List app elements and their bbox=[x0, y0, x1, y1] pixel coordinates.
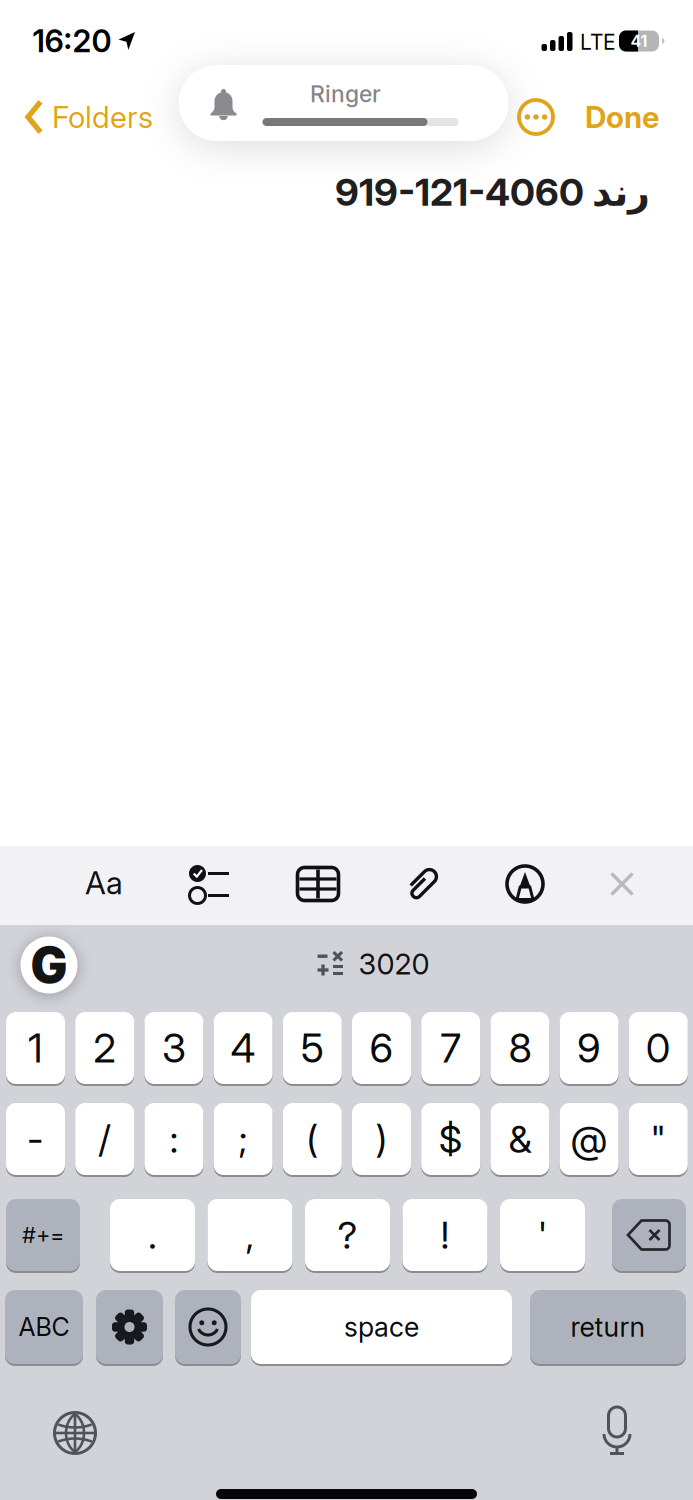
button[interactable]: , bbox=[207, 1199, 292, 1271]
staticText: ! bbox=[440, 1212, 449, 1258]
staticText: 8 bbox=[508, 1024, 531, 1072]
button[interactable]: . bbox=[110, 1199, 195, 1271]
staticText: . bbox=[148, 1212, 157, 1258]
staticText: ) bbox=[375, 1116, 387, 1162]
staticText: ( bbox=[306, 1116, 318, 1162]
staticText: Done bbox=[585, 99, 659, 135]
button[interactable]: 5 bbox=[283, 1012, 342, 1084]
button[interactable] bbox=[610, 872, 634, 896]
staticText: #+= bbox=[22, 1222, 64, 1248]
staticText: 1 bbox=[28, 1024, 43, 1072]
button[interactable]: return bbox=[530, 1290, 686, 1364]
staticText: ? bbox=[337, 1212, 357, 1258]
button[interactable]: Folders bbox=[25, 99, 153, 135]
button[interactable] bbox=[612, 1199, 686, 1271]
staticText: G bbox=[30, 935, 67, 995]
button[interactable]: " bbox=[629, 1103, 688, 1175]
button[interactable] bbox=[602, 1407, 632, 1455]
staticText: LTE bbox=[580, 29, 616, 55]
staticText: " bbox=[650, 1116, 666, 1162]
button[interactable]: ! bbox=[402, 1199, 487, 1271]
staticText: return bbox=[570, 1311, 645, 1343]
staticText: $ bbox=[439, 1116, 463, 1162]
button[interactable]: - bbox=[6, 1103, 65, 1175]
staticText: 5 bbox=[301, 1024, 324, 1072]
staticText: 0 bbox=[646, 1024, 671, 1072]
button[interactable]: 1 bbox=[6, 1012, 65, 1084]
button[interactable]: ' bbox=[500, 1199, 585, 1271]
button[interactable]: #+= bbox=[6, 1199, 80, 1271]
staticText: 16:20 bbox=[32, 22, 111, 60]
button[interactable]: 9 bbox=[560, 1012, 619, 1084]
staticText: ‎919-121-4060 رند bbox=[335, 169, 650, 215]
button[interactable] bbox=[297, 867, 338, 900]
staticText: 7 bbox=[440, 1024, 461, 1072]
staticText: ; bbox=[239, 1116, 248, 1162]
button[interactable]: G bbox=[20, 936, 77, 993]
button[interactable]: : bbox=[144, 1103, 203, 1175]
button[interactable] bbox=[96, 1290, 163, 1364]
button[interactable]: / bbox=[75, 1103, 134, 1175]
button[interactable]: ( bbox=[283, 1103, 342, 1175]
button[interactable]: Done bbox=[585, 99, 659, 135]
button[interactable]: $ bbox=[421, 1103, 480, 1175]
staticText: : bbox=[169, 1116, 178, 1162]
staticText: 6 bbox=[369, 1024, 393, 1072]
staticText: 4 bbox=[231, 1024, 256, 1072]
staticText: & bbox=[508, 1116, 531, 1162]
staticText: Folders bbox=[52, 99, 153, 135]
button[interactable]: 2 bbox=[75, 1012, 134, 1084]
staticText: 3 bbox=[162, 1024, 186, 1072]
button[interactable] bbox=[507, 866, 543, 902]
staticText: , bbox=[245, 1212, 254, 1258]
button[interactable]: Aa bbox=[85, 864, 123, 902]
button[interactable]: & bbox=[490, 1103, 549, 1175]
button[interactable] bbox=[516, 97, 556, 137]
button[interactable] bbox=[405, 864, 439, 904]
button[interactable]: 3020 bbox=[316, 946, 429, 982]
button[interactable] bbox=[188, 864, 230, 904]
staticText: ' bbox=[537, 1212, 547, 1258]
staticText: 3020 bbox=[358, 946, 429, 982]
button[interactable]: ; bbox=[214, 1103, 273, 1175]
staticText: 2 bbox=[93, 1024, 116, 1072]
button[interactable]: 4 bbox=[214, 1012, 273, 1084]
staticText: Aa bbox=[85, 864, 123, 902]
staticText: ABC bbox=[18, 1312, 69, 1342]
button[interactable] bbox=[175, 1290, 241, 1364]
staticText: - bbox=[27, 1116, 44, 1162]
staticText: / bbox=[98, 1116, 111, 1162]
staticText: 41 bbox=[630, 31, 647, 51]
button[interactable]: @ bbox=[560, 1103, 619, 1175]
button[interactable]: ) bbox=[352, 1103, 411, 1175]
button[interactable]: space bbox=[251, 1290, 512, 1364]
button[interactable]: 6 bbox=[352, 1012, 411, 1084]
button[interactable]: ABC bbox=[5, 1290, 83, 1364]
button[interactable]: ? bbox=[305, 1199, 390, 1271]
button[interactable]: 3 bbox=[144, 1012, 203, 1084]
staticText: space bbox=[344, 1311, 419, 1343]
button[interactable]: 8 bbox=[490, 1012, 549, 1084]
button[interactable]: 7 bbox=[421, 1012, 480, 1084]
staticText: 9 bbox=[577, 1024, 601, 1072]
staticText: Ringer bbox=[310, 80, 381, 108]
button[interactable]: 0 bbox=[629, 1012, 688, 1084]
staticText: @ bbox=[571, 1116, 608, 1162]
button[interactable] bbox=[54, 1412, 95, 1453]
